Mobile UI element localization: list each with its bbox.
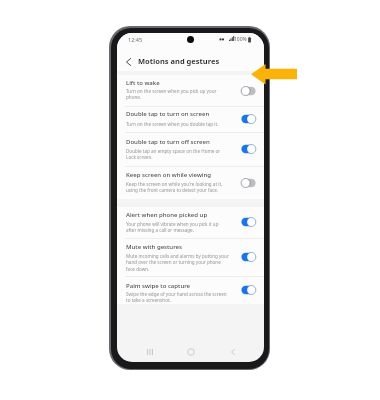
staticText: Motions and gestures — [138, 56, 220, 66]
staticText: 100% — [234, 36, 247, 43]
button[interactable]: Switch off — [241, 178, 256, 188]
staticText: Mute with gestures — [126, 243, 183, 251]
staticText: Lock screen. — [126, 154, 153, 160]
button[interactable] — [117, 276, 264, 304]
button[interactable] — [117, 107, 264, 132]
staticText: Lift to wake — [126, 79, 160, 87]
button[interactable] — [117, 75, 264, 106]
button[interactable]: Switch off — [241, 86, 256, 96]
staticText: using the front camera to detect your fa… — [126, 187, 219, 193]
button[interactable] — [117, 167, 264, 200]
staticText: Keep screen on while viewing — [126, 171, 211, 179]
button[interactable] — [117, 238, 264, 275]
staticText: Swipe the edge of your hand across the s… — [126, 291, 227, 297]
button[interactable]: Home — [183, 344, 199, 360]
staticText: Turn on the screen when you pick up your — [126, 88, 217, 94]
button[interactable]: Switch on — [241, 285, 256, 295]
staticText: phone. — [126, 94, 142, 100]
button[interactable]: Back — [120, 54, 136, 70]
button[interactable]: Switch on — [241, 114, 256, 124]
staticText: Double tap to turn off screen — [126, 138, 210, 146]
button[interactable] — [117, 133, 264, 166]
staticText: Keep the screen on while you're looking … — [126, 181, 223, 187]
button[interactable]: Switch on — [241, 252, 256, 262]
staticText: 12:45 — [128, 36, 143, 43]
staticText: Turn on the screen when you double tap i… — [126, 121, 219, 127]
button[interactable]: Switch on — [241, 217, 256, 227]
staticText: to take a screenshot. — [126, 297, 171, 303]
staticText: Mute incoming calls and alarms by puttin… — [126, 253, 229, 259]
staticText: Palm swipe to capture — [126, 282, 191, 290]
staticText: Your phone will vibrate when you pick it… — [126, 221, 219, 227]
staticText: hand over the screen or turning your pho… — [126, 259, 221, 265]
staticText: Double tap to turn on screen — [126, 110, 210, 118]
button[interactable]: Back — [225, 344, 241, 360]
staticText: face down. — [126, 266, 150, 272]
staticText: Double tap an empty space on the Home or — [126, 148, 221, 154]
button[interactable] — [117, 207, 264, 237]
staticText: after missing a call or message. — [126, 227, 194, 233]
button[interactable]: Switch on — [241, 144, 256, 154]
button[interactable]: Recent apps — [142, 344, 158, 360]
staticText: Alert when phone picked up — [126, 211, 208, 219]
